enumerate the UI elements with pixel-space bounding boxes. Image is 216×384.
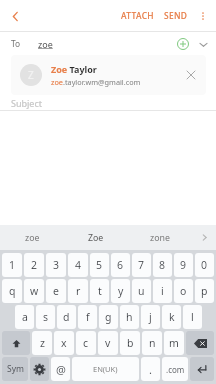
staticText: 7 bbox=[138, 258, 145, 272]
button[interactable]: m bbox=[164, 331, 184, 355]
staticText: q bbox=[9, 284, 16, 298]
button[interactable]: h bbox=[120, 305, 139, 329]
button[interactable]: ATTACH bbox=[116, 5, 159, 26]
staticText: c bbox=[83, 336, 89, 350]
staticText: ATTACH bbox=[121, 10, 154, 21]
button[interactable]: 9 bbox=[174, 253, 193, 277]
button[interactable]: 8 bbox=[153, 253, 172, 277]
staticText: EN(UK) bbox=[93, 364, 118, 374]
staticText: . bbox=[149, 362, 152, 377]
staticText: zoe bbox=[25, 232, 40, 244]
staticText: SEND bbox=[164, 10, 188, 21]
staticText: p bbox=[201, 284, 208, 298]
button[interactable]: a bbox=[15, 305, 34, 329]
staticText: e bbox=[53, 284, 59, 298]
staticText: v bbox=[105, 336, 111, 350]
staticText: Zoe bbox=[88, 232, 104, 244]
button[interactable]: Subject bbox=[0, 95, 216, 110]
staticText: j bbox=[149, 310, 152, 324]
button[interactable]: .com bbox=[162, 357, 188, 381]
button[interactable]: p bbox=[195, 279, 214, 303]
button[interactable]: o bbox=[174, 279, 193, 303]
button[interactable]: y bbox=[111, 279, 130, 303]
staticText: o bbox=[180, 284, 187, 298]
staticText: k bbox=[169, 310, 175, 324]
staticText: zoe.taylor.wm@gmail.com bbox=[51, 77, 141, 87]
staticText: 4 bbox=[75, 258, 82, 272]
button[interactable]: 7 bbox=[132, 253, 151, 277]
staticText: l bbox=[191, 310, 194, 324]
staticText: To bbox=[11, 38, 21, 49]
staticText: t bbox=[98, 284, 102, 298]
staticText: x bbox=[61, 336, 67, 350]
button[interactable]: EN(UK) bbox=[72, 357, 139, 381]
staticText: 0 bbox=[201, 258, 208, 272]
button[interactable]: Z bbox=[11, 55, 206, 95]
button[interactable]: 3 bbox=[46, 253, 66, 277]
staticText: .com bbox=[166, 364, 185, 375]
button[interactable]: 2 bbox=[24, 253, 44, 277]
button[interactable]: c bbox=[76, 331, 96, 355]
staticText: 8 bbox=[159, 258, 166, 272]
staticText: m bbox=[169, 336, 179, 350]
staticText: a bbox=[22, 310, 28, 324]
staticText: 2 bbox=[31, 258, 38, 272]
button[interactable]: Delete bbox=[186, 331, 214, 355]
button[interactable]: n bbox=[142, 331, 162, 355]
button[interactable]: zone bbox=[128, 225, 192, 250]
staticText: h bbox=[126, 310, 133, 324]
staticText: 9 bbox=[180, 258, 187, 272]
button[interactable]: @ bbox=[51, 357, 70, 381]
staticText: d bbox=[63, 310, 70, 324]
button[interactable]: More options bbox=[193, 6, 213, 26]
button[interactable]: u bbox=[132, 279, 151, 303]
button[interactable]: zoe bbox=[0, 225, 64, 250]
button[interactable]: z bbox=[32, 331, 52, 355]
button[interactable]: More suggestions bbox=[192, 225, 216, 250]
button[interactable]: b bbox=[120, 331, 140, 355]
staticText: i bbox=[161, 284, 164, 298]
button[interactable]: j bbox=[141, 305, 160, 329]
button[interactable]: Keyboard settings bbox=[30, 357, 49, 381]
staticText: f bbox=[86, 310, 90, 324]
button[interactable]: f bbox=[78, 305, 97, 329]
staticText: zone bbox=[150, 232, 170, 244]
button[interactable]: w bbox=[24, 279, 44, 303]
button[interactable]: Show more fields bbox=[193, 34, 213, 54]
staticText: zoe bbox=[38, 38, 53, 50]
button[interactable]: i bbox=[153, 279, 172, 303]
button[interactable]: 5 bbox=[90, 253, 109, 277]
button[interactable]: k bbox=[162, 305, 181, 329]
button[interactable]: SEND bbox=[159, 5, 193, 26]
button[interactable]: 6 bbox=[111, 253, 130, 277]
button[interactable]: Navigate up bbox=[0, 1, 30, 31]
button[interactable]: t bbox=[90, 279, 109, 303]
button[interactable]: Zoe bbox=[64, 225, 128, 250]
button[interactable]: d bbox=[57, 305, 76, 329]
button[interactable]: Add recipient bbox=[173, 34, 193, 54]
staticText: Sym bbox=[7, 363, 24, 375]
staticText: 3 bbox=[53, 258, 60, 272]
button[interactable]: r bbox=[68, 279, 88, 303]
button[interactable]: e bbox=[46, 279, 66, 303]
button[interactable]: . bbox=[141, 357, 160, 381]
button[interactable]: To bbox=[0, 32, 216, 55]
button[interactable]: q bbox=[2, 279, 22, 303]
staticText: r bbox=[76, 284, 81, 298]
button[interactable]: 0 bbox=[195, 253, 214, 277]
button[interactable]: Shift bbox=[2, 331, 30, 355]
button[interactable]: Sym bbox=[2, 357, 28, 381]
button[interactable]: 1 bbox=[2, 253, 22, 277]
button[interactable]: g bbox=[99, 305, 118, 329]
button[interactable]: s bbox=[36, 305, 55, 329]
staticText: y bbox=[118, 284, 124, 298]
button[interactable]: Remove recipient bbox=[183, 67, 199, 83]
staticText: g bbox=[105, 310, 112, 324]
button[interactable]: v bbox=[98, 331, 118, 355]
button[interactable]: 4 bbox=[68, 253, 88, 277]
staticText: 5 bbox=[96, 258, 103, 272]
button[interactable]: l bbox=[183, 305, 202, 329]
button[interactable]: Enter bbox=[190, 357, 214, 381]
button[interactable]: x bbox=[54, 331, 74, 355]
